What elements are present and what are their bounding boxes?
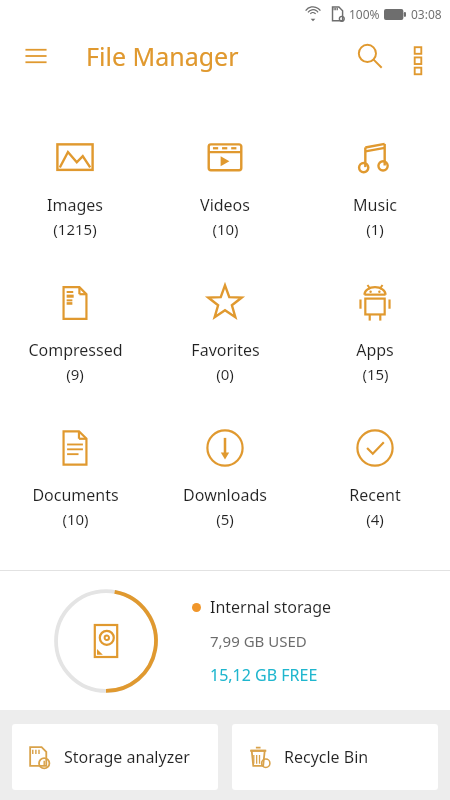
staticText: Storage analyzer <box>64 746 190 768</box>
button[interactable]: Downloads <box>150 402 300 547</box>
button[interactable]: Internal storage <box>0 571 450 710</box>
staticText: Videos <box>200 194 250 216</box>
button[interactable]: Music <box>300 112 450 257</box>
staticText: (4) <box>366 509 384 529</box>
staticText: (9) <box>66 364 84 384</box>
staticText: Apps <box>356 339 394 361</box>
staticText: (10) <box>62 509 89 529</box>
staticText: Favorites <box>191 339 260 361</box>
button[interactable]: Videos <box>150 112 300 257</box>
staticText: (1) <box>366 219 384 239</box>
staticText: Recycle Bin <box>284 746 369 768</box>
staticText: Downloads <box>183 484 267 506</box>
staticText: 15,12 GB FREE <box>210 664 318 686</box>
staticText: (15) <box>362 364 389 384</box>
staticText: 7,99 GB USED <box>210 631 307 651</box>
button[interactable]: Images <box>0 112 150 257</box>
staticText: Images <box>47 194 103 216</box>
button[interactable]: Favorites <box>150 257 300 402</box>
staticText: Documents <box>32 484 119 506</box>
staticText: (5) <box>216 509 234 529</box>
button[interactable]: Apps <box>300 257 450 402</box>
button[interactable]: Search <box>346 32 394 80</box>
button[interactable]: Documents <box>0 402 150 547</box>
button[interactable]: Recycle Bin <box>232 724 438 790</box>
button[interactable]: Storage analyzer <box>12 724 218 790</box>
staticText: (1215) <box>53 219 97 239</box>
staticText: File Manager <box>86 39 239 73</box>
staticText: 03:08 <box>411 6 442 22</box>
staticText: (0) <box>216 364 234 384</box>
button[interactable]: Recent <box>300 402 450 547</box>
staticText: Recent <box>349 484 401 506</box>
staticText: (10) <box>212 219 239 239</box>
button[interactable]: Compressed <box>0 257 150 402</box>
button[interactable]: More options <box>394 32 442 80</box>
staticText: Music <box>353 194 397 216</box>
staticText: 100% <box>349 6 380 22</box>
button[interactable]: Menu <box>14 34 58 78</box>
staticText: Compressed <box>28 339 123 361</box>
staticText: Internal storage <box>210 596 332 618</box>
